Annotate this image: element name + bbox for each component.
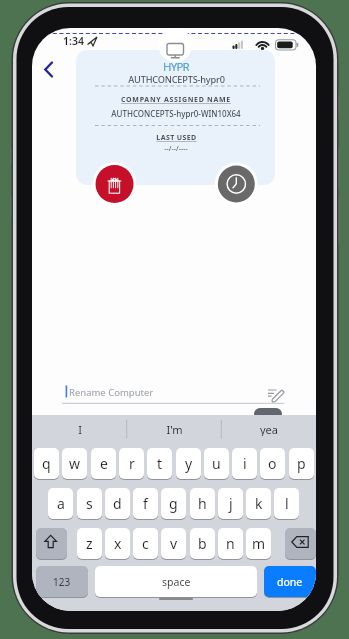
button[interactable]: i [232,448,257,479]
button[interactable]: k [246,488,271,519]
button[interactable]: n [218,528,243,559]
staticText: p [297,454,306,473]
button[interactable]: done [264,566,316,597]
staticText: i [243,454,247,473]
staticText: 1:34 [63,34,84,48]
button[interactable]: 123 [36,566,88,597]
button[interactable]: b [190,528,215,559]
staticText: q [42,454,51,473]
staticText: t [157,454,163,473]
staticText: LAST USED [156,133,197,143]
button[interactable]: z [77,528,102,559]
button[interactable]: yea [229,422,309,436]
staticText: c [142,534,149,553]
button[interactable]: y [176,448,201,479]
staticText: y [185,454,193,473]
button[interactable]: r [119,448,144,479]
staticText: w [69,454,81,473]
button[interactable]: o [260,448,285,479]
button[interactable]: x [105,528,130,559]
staticText: e [100,454,108,473]
button[interactable] [215,162,258,205]
staticText: f [143,494,148,513]
button[interactable]: s [77,488,102,519]
button[interactable]: v [161,528,186,559]
button[interactable]: u [204,448,229,479]
button[interactable]: h [190,488,215,519]
staticText: b [198,534,207,553]
staticText: done [277,575,303,589]
staticText: n [226,534,235,553]
staticText: u [212,454,221,473]
staticText: HYPR [163,59,189,73]
button[interactable]: e [91,448,116,479]
staticText: j [229,494,233,513]
button[interactable]: space [95,566,257,597]
staticText: a [57,494,65,513]
staticText: r [129,454,135,473]
staticText: o [268,454,277,473]
button[interactable]: a [48,488,73,519]
button[interactable] [285,528,316,559]
button[interactable]: f [133,488,158,519]
staticText: g [169,494,178,513]
button[interactable]: l [274,488,299,519]
staticText: yea [260,422,278,436]
staticText: COMPANY ASSIGNED NAME [121,95,231,105]
staticText: h [198,494,207,513]
button[interactable]: m [246,528,271,559]
button[interactable] [93,162,136,205]
button[interactable] [36,528,67,559]
button[interactable]: g [161,488,186,519]
staticText: z [86,534,93,553]
staticText: space [162,575,191,589]
button[interactable]: t [147,448,172,479]
staticText: 123 [53,575,71,589]
button[interactable]: p [289,448,314,479]
staticText: AUTHCONCEPTS-hypr0 [128,73,225,86]
staticText: x [114,534,122,553]
staticText: l [285,494,289,513]
button[interactable]: j [218,488,243,519]
button[interactable] [62,382,285,404]
button[interactable]: c [133,528,158,559]
staticText: I [78,422,82,436]
staticText: k [255,494,263,513]
staticText: AUTHCONCEPTS-hypr0-WIN10X64 [111,108,241,119]
button[interactable]: I'm [134,422,214,436]
staticText: Rename Computer [69,386,154,399]
staticText: d [113,494,122,513]
button[interactable]: q [34,448,59,479]
button[interactable] [42,59,58,80]
button[interactable]: d [105,488,130,519]
staticText: --/--/---- [164,144,188,154]
staticText: v [170,534,178,553]
button[interactable]: w [62,448,87,479]
staticText: s [86,494,93,513]
button[interactable]: I [40,422,120,436]
staticText: m [252,534,266,553]
staticText: I'm [166,422,183,436]
